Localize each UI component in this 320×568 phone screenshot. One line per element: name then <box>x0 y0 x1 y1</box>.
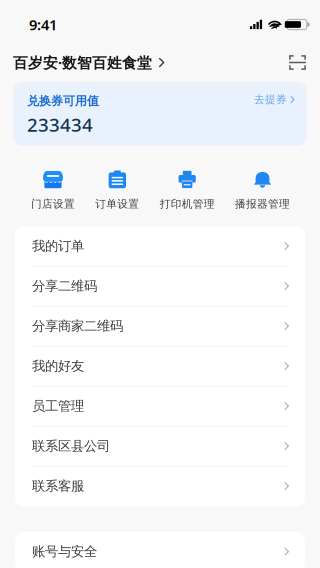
staticText: 去提券 <box>254 93 287 106</box>
staticText: 分享商家二维码 <box>32 318 123 334</box>
button[interactable]: 我的订单 <box>15 226 305 266</box>
button[interactable]: 打印机管理 <box>160 170 215 210</box>
staticText: 打印机管理 <box>160 197 215 210</box>
staticText: 9:41 <box>29 15 57 34</box>
staticText: 门店设置 <box>31 197 75 210</box>
button[interactable]: 扫一扫 <box>286 51 309 73</box>
button[interactable]: 联系区县公司 <box>15 426 305 466</box>
button[interactable]: 百岁安·数智百姓食堂 <box>13 48 164 77</box>
staticText: 分享二维码 <box>32 278 97 294</box>
button[interactable]: 去提券 <box>254 93 294 109</box>
staticText: 233434 <box>27 112 93 137</box>
staticText: 账号与安全 <box>32 543 97 560</box>
staticText: 播报器管理 <box>235 197 290 210</box>
button[interactable]: 联系客服 <box>15 466 305 506</box>
staticText: 百岁安·数智百姓食堂 <box>13 53 152 72</box>
button[interactable]: 门店设置 <box>31 170 75 210</box>
staticText: 员工管理 <box>32 398 84 414</box>
staticText: 联系客服 <box>32 478 84 494</box>
button[interactable]: 账号与安全 <box>15 532 305 568</box>
button[interactable]: 分享二维码 <box>15 266 305 306</box>
staticText: 订单设置 <box>95 197 139 210</box>
button[interactable]: 我的好友 <box>15 346 305 386</box>
button[interactable]: 订单设置 <box>95 170 139 210</box>
staticText: 兑换券可用值 <box>27 94 99 108</box>
button[interactable]: 播报器管理 <box>235 170 290 210</box>
button[interactable]: 员工管理 <box>15 386 305 426</box>
button[interactable]: 分享商家二维码 <box>15 306 305 346</box>
staticText: 我的订单 <box>32 238 84 254</box>
staticText: 我的好友 <box>32 358 84 374</box>
staticText: 联系区县公司 <box>32 438 110 454</box>
